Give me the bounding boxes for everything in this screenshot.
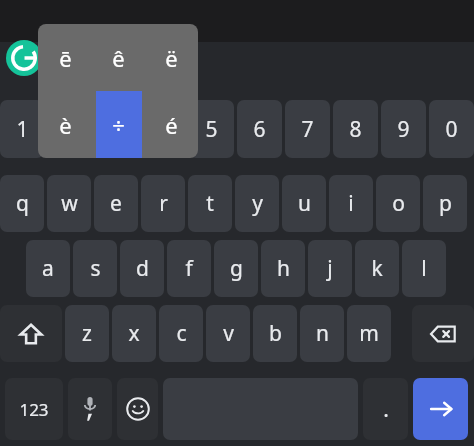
staticText: 2 xyxy=(63,115,76,144)
button[interactable]: r xyxy=(141,175,185,232)
staticText: 123 xyxy=(19,398,49,421)
staticText: r xyxy=(159,189,168,218)
staticText: h xyxy=(277,254,290,283)
staticText: 0 xyxy=(445,115,458,144)
button[interactable]: u xyxy=(282,175,326,232)
button[interactable]: 1 xyxy=(0,100,44,158)
staticText: ÷ xyxy=(112,110,125,140)
button[interactable]: x xyxy=(112,305,156,362)
staticText: 3 xyxy=(110,115,123,144)
button[interactable]: n xyxy=(300,305,344,362)
button[interactable]: y xyxy=(235,175,279,232)
button[interactable]: d xyxy=(120,240,164,297)
button[interactable]: s xyxy=(73,240,117,297)
button[interactable]: 3 xyxy=(94,100,138,158)
staticText: ê xyxy=(112,43,125,73)
staticText: z xyxy=(82,319,92,348)
staticText: ē xyxy=(59,43,72,73)
button[interactable]: 7 xyxy=(285,100,330,158)
staticText: l xyxy=(421,254,427,283)
button[interactable]: f xyxy=(167,240,211,297)
button[interactable]: b xyxy=(253,305,297,362)
staticText: f xyxy=(185,254,193,283)
button[interactable]: . xyxy=(363,378,408,440)
staticText: o xyxy=(392,189,405,218)
button[interactable]: t xyxy=(188,175,232,232)
staticText: 6 xyxy=(253,115,266,144)
button[interactable]: Backspace xyxy=(412,305,474,362)
button[interactable]: p xyxy=(423,175,467,232)
button[interactable]: 9 xyxy=(381,100,426,158)
button[interactable]: 5 xyxy=(189,100,234,158)
staticText: i xyxy=(348,189,354,218)
button[interactable]: z xyxy=(65,305,109,362)
staticText: è xyxy=(59,110,72,140)
button[interactable]: j xyxy=(308,240,352,297)
staticText: q xyxy=(16,189,29,218)
button[interactable]: Voice input and comma xyxy=(68,378,112,440)
staticText: 5 xyxy=(205,115,218,144)
button[interactable]: a xyxy=(26,240,70,297)
button[interactable]: é xyxy=(145,91,198,158)
staticText: y xyxy=(252,189,263,218)
staticText: 1 xyxy=(16,115,29,144)
button[interactable]: w xyxy=(47,175,91,232)
button[interactable]: c xyxy=(159,305,203,362)
staticText: d xyxy=(136,254,149,283)
button[interactable]: 0 xyxy=(429,100,474,158)
button[interactable]: i xyxy=(329,175,373,232)
button[interactable]: l xyxy=(402,240,446,297)
staticText: v xyxy=(223,319,234,348)
button[interactable]: m xyxy=(347,305,391,362)
button[interactable]: e xyxy=(94,175,138,232)
button[interactable]: o xyxy=(376,175,420,232)
staticText: a xyxy=(42,254,54,283)
button[interactable]: Grammarly xyxy=(6,40,42,76)
staticText: . xyxy=(383,395,389,424)
button[interactable]: g xyxy=(214,240,258,297)
staticText: g xyxy=(230,254,243,283)
button[interactable]: Shift xyxy=(0,305,62,362)
staticText: 9 xyxy=(397,115,410,144)
staticText: x xyxy=(128,319,140,348)
button[interactable]: ë xyxy=(145,24,198,91)
staticText: m xyxy=(359,319,379,348)
button[interactable]: 4 xyxy=(141,100,186,158)
button[interactable]: Emoji xyxy=(117,378,158,440)
staticText: w xyxy=(61,189,78,218)
staticText: 4 xyxy=(157,115,170,144)
staticText: t xyxy=(206,189,214,218)
staticText: é xyxy=(165,110,178,140)
staticText: k xyxy=(371,254,383,283)
staticText: 8 xyxy=(349,115,362,144)
button[interactable]: 2 xyxy=(47,100,91,158)
staticText: s xyxy=(90,254,101,283)
button[interactable]: Enter xyxy=(413,378,468,440)
button[interactable]: 6 xyxy=(237,100,282,158)
button[interactable]: ÷ xyxy=(92,91,145,158)
staticText: j xyxy=(327,254,333,283)
button[interactable]: 123 xyxy=(5,378,63,440)
button[interactable]: h xyxy=(261,240,305,297)
staticText: b xyxy=(269,319,282,348)
button[interactable]: q xyxy=(0,175,44,232)
button[interactable]: ê xyxy=(92,24,145,91)
staticText: n xyxy=(316,319,329,348)
button[interactable]: è xyxy=(38,91,92,158)
staticText: p xyxy=(439,189,452,218)
button[interactable]: 8 xyxy=(333,100,378,158)
staticText: u xyxy=(298,189,311,218)
staticText: c xyxy=(176,319,187,348)
button[interactable]: v xyxy=(206,305,250,362)
staticText: 7 xyxy=(301,115,314,144)
button[interactable]: ē xyxy=(38,24,92,91)
button[interactable]: k xyxy=(355,240,399,297)
staticText: ë xyxy=(165,43,178,73)
staticText: e xyxy=(110,189,122,218)
